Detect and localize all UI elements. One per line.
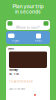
staticText: Tickets from $49 xyxy=(9,80,33,83)
button[interactable]: Where to next? xyxy=(6,20,50,30)
staticText: in seconds xyxy=(15,9,41,15)
button[interactable]: Flights xyxy=(6,31,50,44)
staticText: Plan your trip xyxy=(12,3,43,9)
staticText: Aspen Ridge xyxy=(9,69,18,71)
staticText: Hotels xyxy=(34,39,41,42)
staticText: Where to next? xyxy=(16,26,40,29)
staticText: Flights xyxy=(12,39,19,42)
staticText: Jazz in the Park xyxy=(9,88,25,91)
staticText: Sat, 9 AM xyxy=(9,73,19,76)
staticText: Events xyxy=(8,47,14,50)
